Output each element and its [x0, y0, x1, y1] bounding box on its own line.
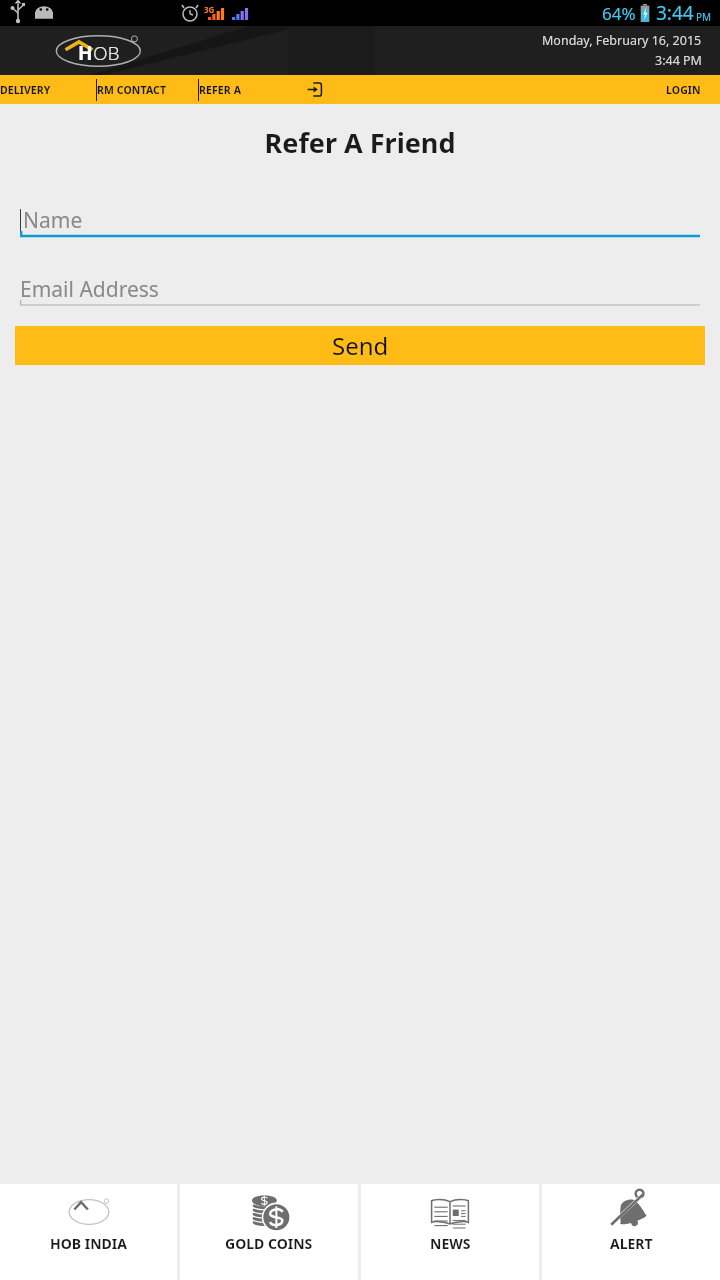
staticText: DELIVERY CENTERS [0, 83, 96, 97]
staticText: Name [23, 206, 83, 235]
staticText: HOB INDIA [50, 1234, 127, 1253]
staticText: Send [332, 329, 389, 362]
button[interactable]: LOGIN [666, 75, 701, 104]
staticText: Monday, February 16, 2015 [542, 32, 702, 49]
staticText: OB [93, 40, 120, 66]
staticText: REFER A FRIEND [199, 83, 283, 97]
staticText: Refer A Friend [0, 124, 720, 161]
staticText: PM [696, 10, 712, 24]
button[interactable]: GOLD COINS [180, 1184, 358, 1280]
button[interactable]: HOB INDIA [0, 1184, 177, 1280]
staticText: RM CONTACT DETAIL [97, 83, 198, 97]
button[interactable]: ALERT [542, 1184, 720, 1280]
button[interactable]: Name [20, 205, 700, 241]
button[interactable]: Email Address [20, 274, 700, 310]
button[interactable]: RM CONTACT DETAIL [97, 75, 198, 104]
button[interactable]: DELIVERY CENTERS [0, 75, 96, 104]
staticText: 3:44 [656, 0, 694, 26]
staticText: NEWS [430, 1234, 471, 1253]
staticText: 64% [602, 2, 636, 25]
button[interactable]: Send [15, 326, 705, 365]
staticText: ALERT [610, 1234, 653, 1253]
staticText: LOGIN [666, 83, 701, 97]
staticText: GOLD COINS [225, 1234, 313, 1253]
staticText: 3:44 PM [655, 52, 702, 69]
staticText: Email Address [20, 275, 159, 304]
button[interactable]: Login [297, 75, 331, 104]
staticText: H [78, 40, 93, 66]
button[interactable]: NEWS [361, 1184, 539, 1280]
staticText: 3G [204, 4, 215, 15]
button[interactable]: REFER A FRIEND [199, 75, 283, 104]
